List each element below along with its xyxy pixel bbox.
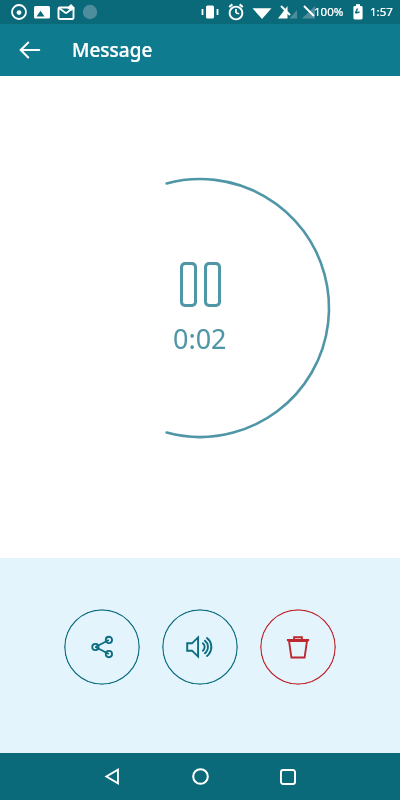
button[interactable]: Share bbox=[64, 609, 140, 685]
button[interactable]: Play aloud bbox=[162, 609, 238, 685]
button[interactable]: Home bbox=[172, 753, 228, 800]
staticText: 100% bbox=[314, 4, 344, 20]
staticText: 1:57 bbox=[370, 4, 393, 20]
staticText: Message bbox=[72, 37, 153, 63]
button[interactable]: Delete bbox=[260, 609, 336, 685]
staticText: 0:02 bbox=[173, 320, 227, 357]
button[interactable]: Back bbox=[8, 28, 52, 72]
button[interactable]: Back bbox=[84, 753, 140, 800]
button[interactable]: Pause bbox=[172, 257, 228, 311]
button[interactable]: Recent apps bbox=[260, 753, 316, 800]
